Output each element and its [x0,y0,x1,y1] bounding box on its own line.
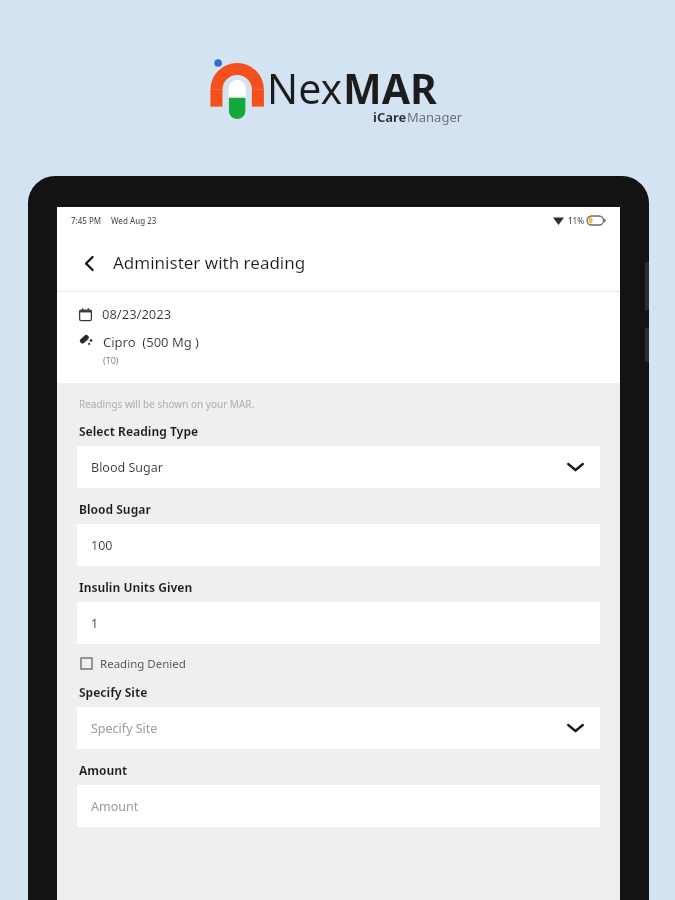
staticText: Insulin Units Given [79,579,193,595]
staticText: 11% [568,215,584,226]
staticText: Blood Sugar [79,501,151,517]
staticText: Cipro (500 Mg ) [103,333,199,351]
staticText: Wed Aug 23 [111,215,157,226]
button[interactable]: Specify Site [77,707,600,749]
staticText: 08/23/2023 [102,305,172,323]
staticText: 7:45 PM [71,215,102,226]
staticText: MAR [343,60,437,116]
staticText: Administer with reading [113,251,306,274]
button[interactable]: Blood Sugar [77,446,600,488]
button[interactable]: Amount [77,785,600,827]
staticText: Manager [407,108,463,126]
staticText: (T0) [103,354,119,366]
button[interactable]: 1 [77,602,600,644]
staticText: Nex [267,60,343,116]
staticText: Readings will be shown on your MAR. [79,397,255,411]
staticText: Amount [79,762,128,778]
button[interactable]: Reading Denied [77,650,186,677]
staticText: Amount [91,798,139,815]
button[interactable]: Back [73,247,105,279]
staticText: Reading Denied [100,656,186,672]
staticText: Specify Site [91,720,158,737]
staticText: Select Reading Type [79,423,199,439]
staticText: iCare [373,108,407,126]
staticText: Blood Sugar [91,459,163,476]
staticText: 100 [91,537,113,554]
staticText: Specify Site [79,684,148,700]
button[interactable]: 100 [77,524,600,566]
staticText: 1 [91,615,99,632]
